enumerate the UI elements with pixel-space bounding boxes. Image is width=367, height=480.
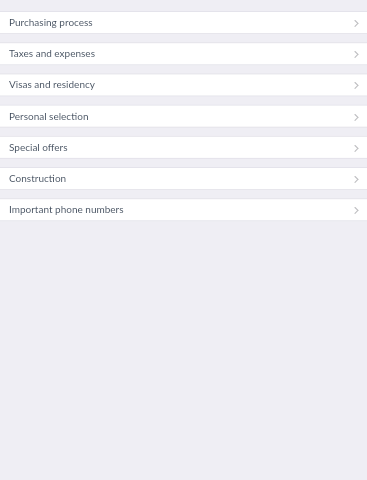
staticText: Important phone numbers: [9, 203, 124, 215]
staticText: Visas and residency: [9, 78, 95, 90]
staticText: Taxes and expenses: [9, 47, 95, 59]
button[interactable]: Taxes and expenses: [0, 43, 367, 64]
staticText: Purchasing process: [9, 16, 93, 28]
staticText: Personal selection: [9, 110, 89, 122]
button[interactable]: Important phone numbers: [0, 199, 367, 220]
button[interactable]: Personal selection: [0, 106, 367, 127]
button[interactable]: Special offers: [0, 137, 367, 158]
staticText: Construction: [9, 172, 67, 184]
staticText: Special offers: [9, 141, 68, 153]
button[interactable]: Construction: [0, 168, 367, 189]
button[interactable]: Purchasing process: [0, 12, 367, 33]
button[interactable]: Visas and residency: [0, 74, 367, 95]
